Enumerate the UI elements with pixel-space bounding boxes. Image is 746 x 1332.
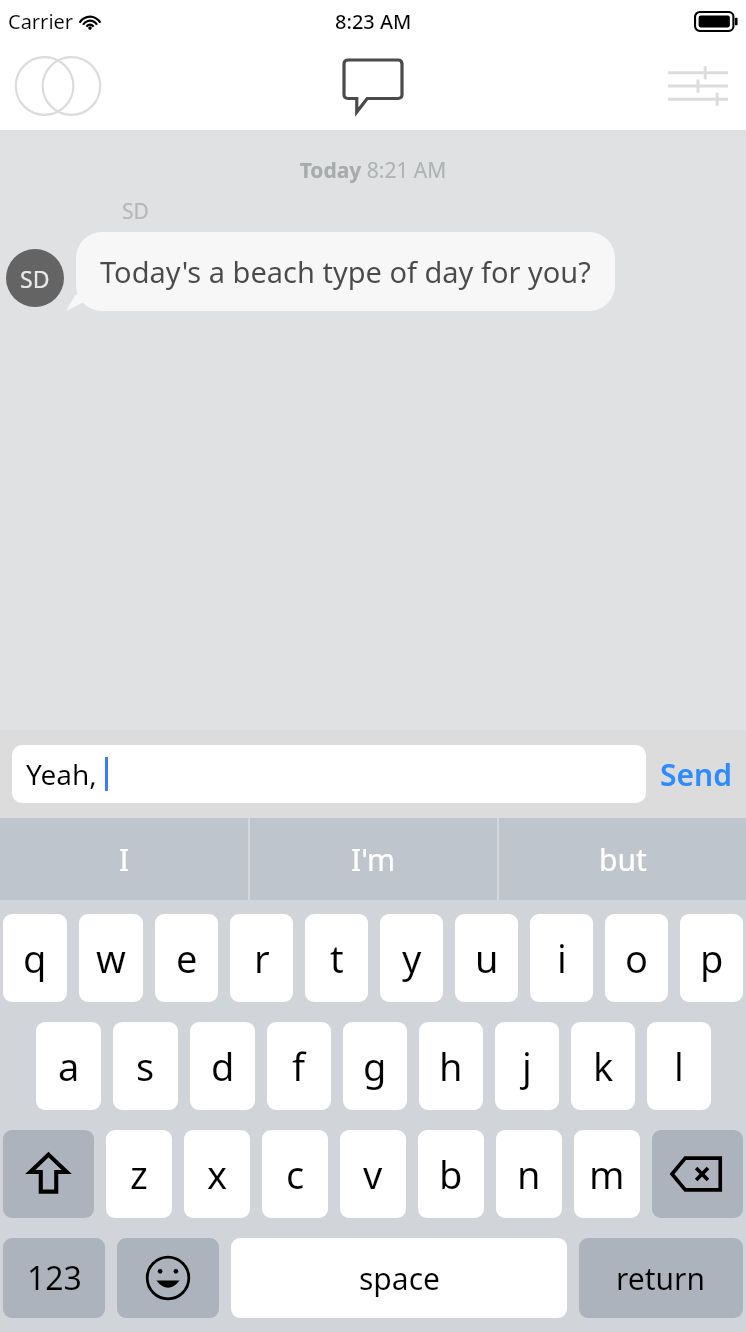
button[interactable]: Messages xyxy=(337,55,409,117)
staticText: v xyxy=(363,1148,383,1200)
staticText: j xyxy=(522,1040,532,1092)
button[interactable]: d xyxy=(190,1022,255,1110)
button[interactable]: j xyxy=(495,1022,559,1110)
staticText: k xyxy=(593,1040,614,1092)
staticText: but xyxy=(599,839,647,880)
button[interactable]: 123 xyxy=(3,1238,105,1318)
button[interactable]: k xyxy=(571,1022,635,1110)
button[interactable]: r xyxy=(230,914,293,1002)
staticText: Today's a beach type of day for you? xyxy=(100,252,591,291)
staticText: e xyxy=(176,932,198,984)
button[interactable]: q xyxy=(3,914,67,1002)
button[interactable]: e xyxy=(155,914,218,1002)
button[interactable]: z xyxy=(106,1130,172,1218)
staticText: return xyxy=(616,1258,706,1299)
staticText: SD xyxy=(122,197,149,226)
button[interactable]: m xyxy=(574,1130,640,1218)
button[interactable]: Contacts xyxy=(16,56,100,116)
button[interactable]: c xyxy=(262,1130,328,1218)
staticText: t xyxy=(330,932,344,984)
button[interactable]: Emoji xyxy=(117,1238,219,1318)
button[interactable]: space xyxy=(231,1238,567,1318)
button[interactable]: I xyxy=(0,818,248,900)
staticText: n xyxy=(517,1148,541,1200)
button[interactable]: g xyxy=(343,1022,407,1110)
staticText: Carrier xyxy=(8,8,74,35)
button[interactable]: h xyxy=(419,1022,483,1110)
staticText: r xyxy=(254,932,270,984)
button[interactable]: u xyxy=(455,914,518,1002)
staticText: g xyxy=(363,1040,387,1092)
staticText: i xyxy=(557,932,567,984)
staticText: h xyxy=(439,1040,463,1092)
staticText: m xyxy=(589,1148,625,1200)
button[interactable]: Shift xyxy=(3,1130,94,1218)
staticText: o xyxy=(625,932,648,984)
button[interactable]: but xyxy=(499,818,746,900)
staticText: Send xyxy=(660,754,732,795)
button[interactable]: f xyxy=(267,1022,331,1110)
staticText: w xyxy=(96,932,126,984)
staticText: u xyxy=(475,932,499,984)
button[interactable]: x xyxy=(184,1130,250,1218)
staticText: space xyxy=(359,1258,440,1299)
button[interactable]: Settings xyxy=(664,56,732,116)
staticText: p xyxy=(700,932,724,984)
staticText: Today 8:21 AM xyxy=(0,156,746,185)
staticText: s xyxy=(136,1040,155,1092)
staticText: I'm xyxy=(351,839,396,880)
staticText: x xyxy=(207,1148,228,1200)
staticText: q xyxy=(23,932,47,984)
staticText: c xyxy=(286,1148,305,1200)
button[interactable]: a xyxy=(36,1022,101,1110)
staticText: f xyxy=(292,1040,306,1092)
staticText: a xyxy=(58,1040,80,1092)
button[interactable]: I'm xyxy=(250,818,497,900)
staticText: 123 xyxy=(27,1256,82,1300)
button[interactable]: b xyxy=(418,1130,484,1218)
staticText: b xyxy=(439,1148,463,1200)
staticText: y xyxy=(402,932,422,984)
staticText: l xyxy=(674,1040,684,1092)
button[interactable]: w xyxy=(79,914,143,1002)
button[interactable]: p xyxy=(680,914,743,1002)
button[interactable]: s xyxy=(113,1022,178,1110)
staticText: d xyxy=(211,1040,235,1092)
button[interactable]: l xyxy=(647,1022,711,1110)
button[interactable]: Backspace xyxy=(652,1130,743,1218)
button[interactable]: v xyxy=(340,1130,406,1218)
button[interactable]: y xyxy=(380,914,443,1002)
button[interactable]: Yeah, xyxy=(12,745,646,803)
staticText: I xyxy=(119,839,130,880)
button[interactable]: return xyxy=(579,1238,743,1318)
button[interactable]: Today's a beach type of day for you? xyxy=(76,232,615,311)
staticText: z xyxy=(130,1148,148,1200)
staticText: Yeah, xyxy=(26,755,97,793)
button[interactable]: t xyxy=(305,914,368,1002)
button[interactable]: o xyxy=(605,914,668,1002)
button[interactable]: Send xyxy=(660,754,732,795)
staticText: 8:23 AM xyxy=(335,8,412,35)
staticText: SD xyxy=(20,263,50,294)
button[interactable]: i xyxy=(530,914,593,1002)
button[interactable]: n xyxy=(496,1130,562,1218)
